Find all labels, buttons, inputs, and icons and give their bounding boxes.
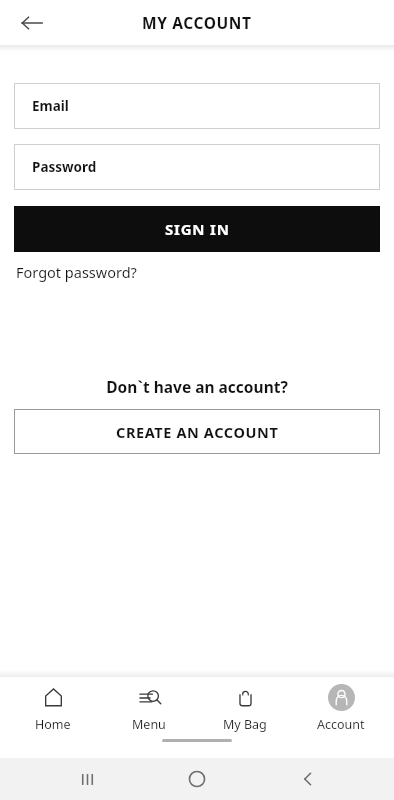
staticText: Email <box>32 97 69 115</box>
button[interactable]: Email <box>14 83 380 129</box>
button[interactable]: CREATE AN ACCOUNT <box>14 409 380 454</box>
staticText: Account <box>317 716 365 733</box>
button[interactable]: Home <box>10 681 96 736</box>
button[interactable]: SIGN IN <box>14 206 380 252</box>
button[interactable]: My Bag <box>202 681 288 736</box>
button[interactable]: Menu <box>106 681 192 736</box>
staticText: My Bag <box>223 716 267 733</box>
button[interactable]: Account <box>298 681 384 736</box>
button[interactable]: Back <box>10 1 54 45</box>
staticText: Don`t have an account? <box>0 376 394 397</box>
staticText: Home <box>35 716 71 733</box>
button[interactable]: Home <box>173 758 221 800</box>
button[interactable]: Recent apps <box>63 758 111 800</box>
button[interactable]: Forgot password? <box>16 260 137 284</box>
staticText: Menu <box>132 716 166 733</box>
staticText: Forgot password? <box>16 262 137 282</box>
button[interactable]: Password <box>14 144 380 190</box>
staticText: Password <box>32 158 97 176</box>
staticText: CREATE AN ACCOUNT <box>116 422 279 442</box>
staticText: MY ACCOUNT <box>142 12 252 33</box>
staticText: SIGN IN <box>165 219 230 239</box>
button[interactable]: Back <box>284 758 332 800</box>
